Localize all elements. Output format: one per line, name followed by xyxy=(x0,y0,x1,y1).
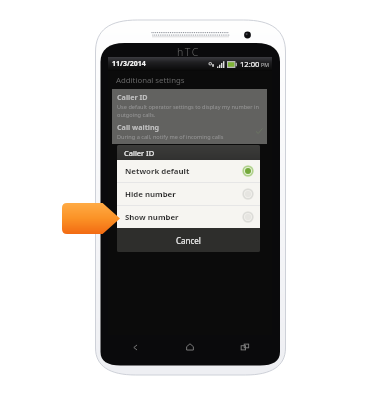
button[interactable]: Call waiting xyxy=(112,119,267,144)
staticText: 11/3/2014 xyxy=(112,59,146,69)
staticText: Use default operator settings to display… xyxy=(117,103,262,118)
button[interactable]: Caller ID xyxy=(112,89,267,119)
staticText: Caller ID xyxy=(124,148,155,158)
button[interactable]: Back xyxy=(108,336,162,358)
staticText: Cancel xyxy=(176,235,201,246)
button[interactable]: Network default xyxy=(117,160,260,182)
staticText: 12:00 xyxy=(240,59,260,69)
button[interactable]: Callout pointer xyxy=(62,203,120,234)
button[interactable]: Home xyxy=(162,336,217,358)
button[interactable]: Hide number xyxy=(117,183,260,205)
staticText: hTC xyxy=(177,45,200,59)
staticText: PM xyxy=(261,61,269,68)
staticText: Call waiting xyxy=(117,122,160,132)
button[interactable]: Recent apps xyxy=(217,336,272,358)
staticText: Additional settings xyxy=(116,75,185,86)
button[interactable]: Cancel xyxy=(117,228,260,252)
staticText: During a call, notify me of incoming cal… xyxy=(117,133,224,141)
staticText: Network default xyxy=(125,166,190,177)
staticText: Show number xyxy=(125,212,179,223)
button[interactable]: Show number xyxy=(117,206,260,228)
staticText: Caller ID xyxy=(117,92,148,102)
staticText: Hide number xyxy=(125,189,176,200)
